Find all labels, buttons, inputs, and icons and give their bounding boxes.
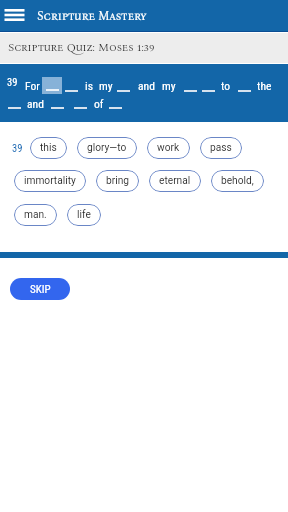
staticText: and <box>138 79 155 93</box>
staticText: For <box>25 79 40 93</box>
staticText: man. <box>24 209 47 221</box>
button[interactable]: life <box>67 204 101 226</box>
button[interactable]: glory—to <box>77 137 137 159</box>
staticText: my <box>99 79 113 93</box>
staticText: Scripture Mastery <box>37 9 147 23</box>
staticText: is <box>85 79 93 93</box>
button[interactable]: this <box>30 137 67 159</box>
staticText: SKIP <box>30 283 51 296</box>
button[interactable]: man. <box>14 204 57 226</box>
staticText: 39 <box>12 142 23 154</box>
button[interactable]: SKIP <box>10 278 70 300</box>
staticText: to <box>221 79 231 93</box>
button[interactable]: eternal <box>149 170 201 192</box>
staticText: glory—to <box>87 142 127 154</box>
button[interactable]: immortality <box>14 170 86 192</box>
button[interactable]: bring <box>96 170 139 192</box>
staticText: bring <box>106 175 129 187</box>
staticText: Scripture Quiz: Moses 1:39 <box>8 40 155 54</box>
staticText: and <box>27 97 44 111</box>
button[interactable]: behold, <box>211 170 264 192</box>
staticText: behold, <box>221 175 254 187</box>
staticText: immortality <box>24 175 76 187</box>
staticText: pass <box>210 142 232 154</box>
staticText: life <box>77 209 91 221</box>
button[interactable]: work <box>147 137 190 159</box>
staticText: 39 <box>7 76 18 88</box>
button[interactable]: Selected blank <box>42 77 62 94</box>
staticText: of <box>94 97 104 111</box>
staticText: the <box>257 79 272 93</box>
staticText: eternal <box>159 175 191 187</box>
button[interactable]: pass <box>200 137 242 159</box>
button[interactable]: Open navigation menu <box>4 7 25 22</box>
staticText: my <box>162 79 176 93</box>
staticText: this <box>40 142 57 154</box>
staticText: work <box>157 142 180 154</box>
